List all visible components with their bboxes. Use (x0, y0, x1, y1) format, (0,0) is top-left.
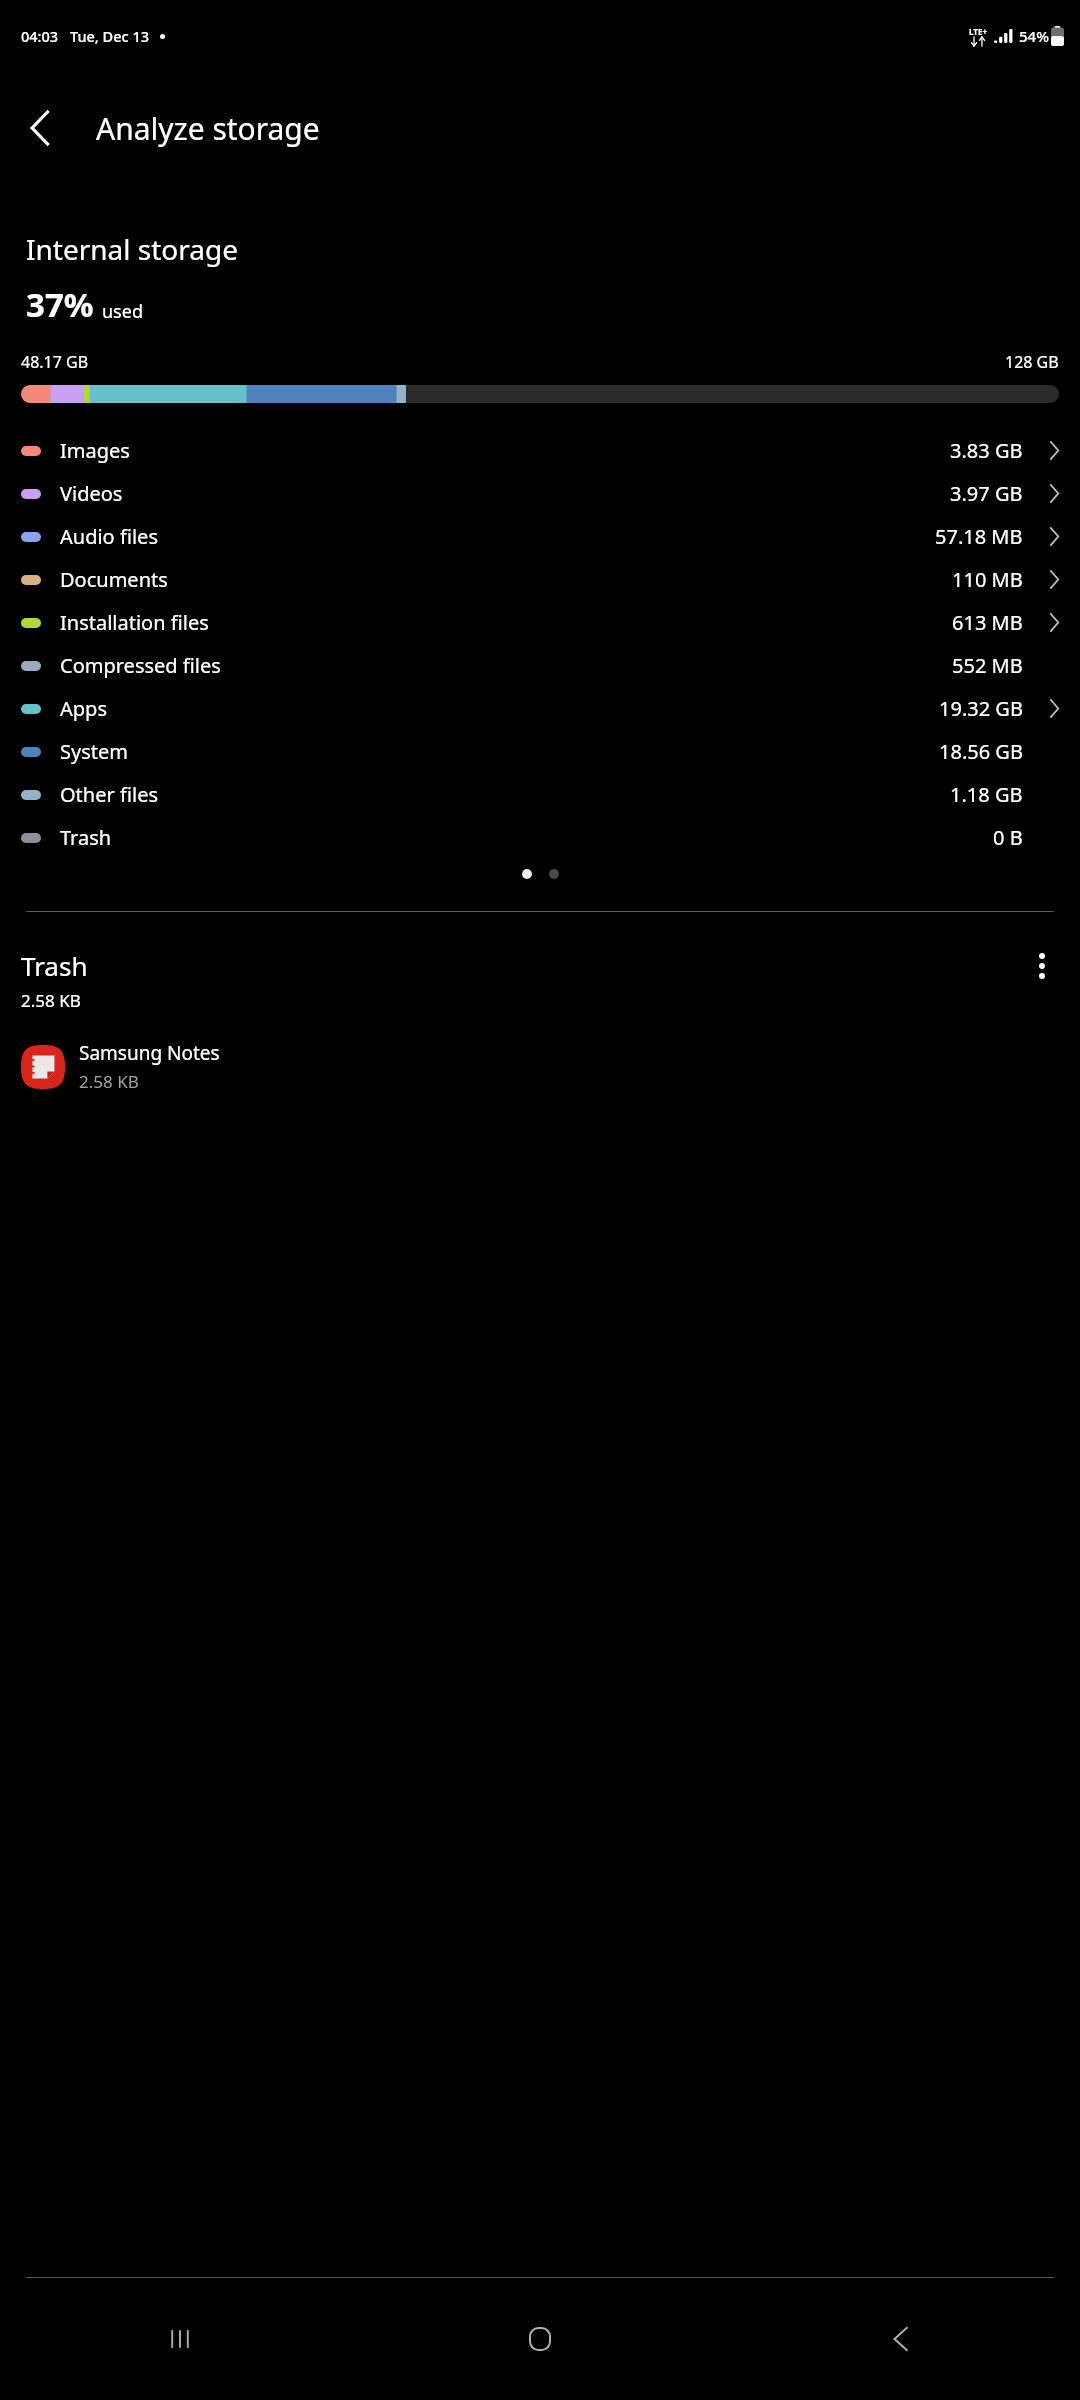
staticText: Compressed files (60, 652, 221, 679)
staticText: 110 MB (952, 566, 1023, 593)
button[interactable]: Samsung Notes (21, 1045, 65, 1089)
staticText: Audio files (60, 523, 158, 550)
staticText: 2.58 KB (79, 1070, 139, 1093)
button[interactable]: Apps (0, 687, 1080, 730)
staticText: 18.56 GB (939, 738, 1023, 765)
staticText: Internal storage (26, 230, 238, 268)
button[interactable]: Audio files (0, 515, 1080, 558)
staticText: Videos (60, 480, 123, 507)
button[interactable]: More options (1014, 938, 1070, 994)
button[interactable]: Trash (0, 816, 1080, 859)
staticText: 48.17 GB (21, 351, 89, 373)
staticText: System (60, 738, 128, 765)
staticText: LTE+ (969, 26, 987, 37)
button[interactable]: Home (360, 2278, 720, 2400)
button[interactable]: Compressed files (0, 644, 1080, 687)
staticText: 19.32 GB (939, 695, 1023, 722)
staticText: 04:03 (21, 26, 59, 46)
button[interactable]: Documents (0, 558, 1080, 601)
staticText: Documents (60, 566, 168, 593)
staticText: Trash (21, 948, 88, 983)
staticText: Analyze storage (96, 108, 320, 149)
staticText: Images (60, 437, 130, 464)
staticText: 613 MB (952, 609, 1023, 636)
button[interactable]: Images (0, 429, 1080, 472)
staticText: Trash (60, 824, 112, 851)
button[interactable]: Back (8, 96, 72, 160)
staticText: 0 B (993, 824, 1023, 851)
staticText: 2.58 KB (21, 989, 81, 1012)
staticText: 57.18 MB (935, 523, 1023, 550)
staticText: Samsung Notes (79, 1040, 220, 1066)
staticText: 552 MB (952, 652, 1023, 679)
staticText: Apps (60, 695, 107, 722)
button[interactable]: Recent apps (0, 2278, 360, 2400)
staticText: used (102, 299, 143, 324)
button[interactable]: System (0, 730, 1080, 773)
staticText: Other files (60, 781, 158, 808)
staticText: 128 GB (1005, 351, 1059, 373)
staticText: 1.18 GB (950, 781, 1023, 808)
button[interactable]: Installation files (0, 601, 1080, 644)
staticText: 37% (26, 282, 94, 327)
staticText: 54% (1019, 26, 1049, 46)
staticText: 3.83 GB (950, 437, 1023, 464)
button[interactable]: Page 2 (549, 869, 559, 879)
button[interactable]: Back (720, 2278, 1080, 2400)
button[interactable]: Page 1 (522, 869, 532, 879)
button[interactable]: Videos (0, 472, 1080, 515)
button[interactable]: Other files (0, 773, 1080, 816)
staticText: Installation files (60, 609, 209, 636)
staticText: 3.97 GB (950, 480, 1023, 507)
staticText: Tue, Dec 13 (70, 26, 149, 46)
